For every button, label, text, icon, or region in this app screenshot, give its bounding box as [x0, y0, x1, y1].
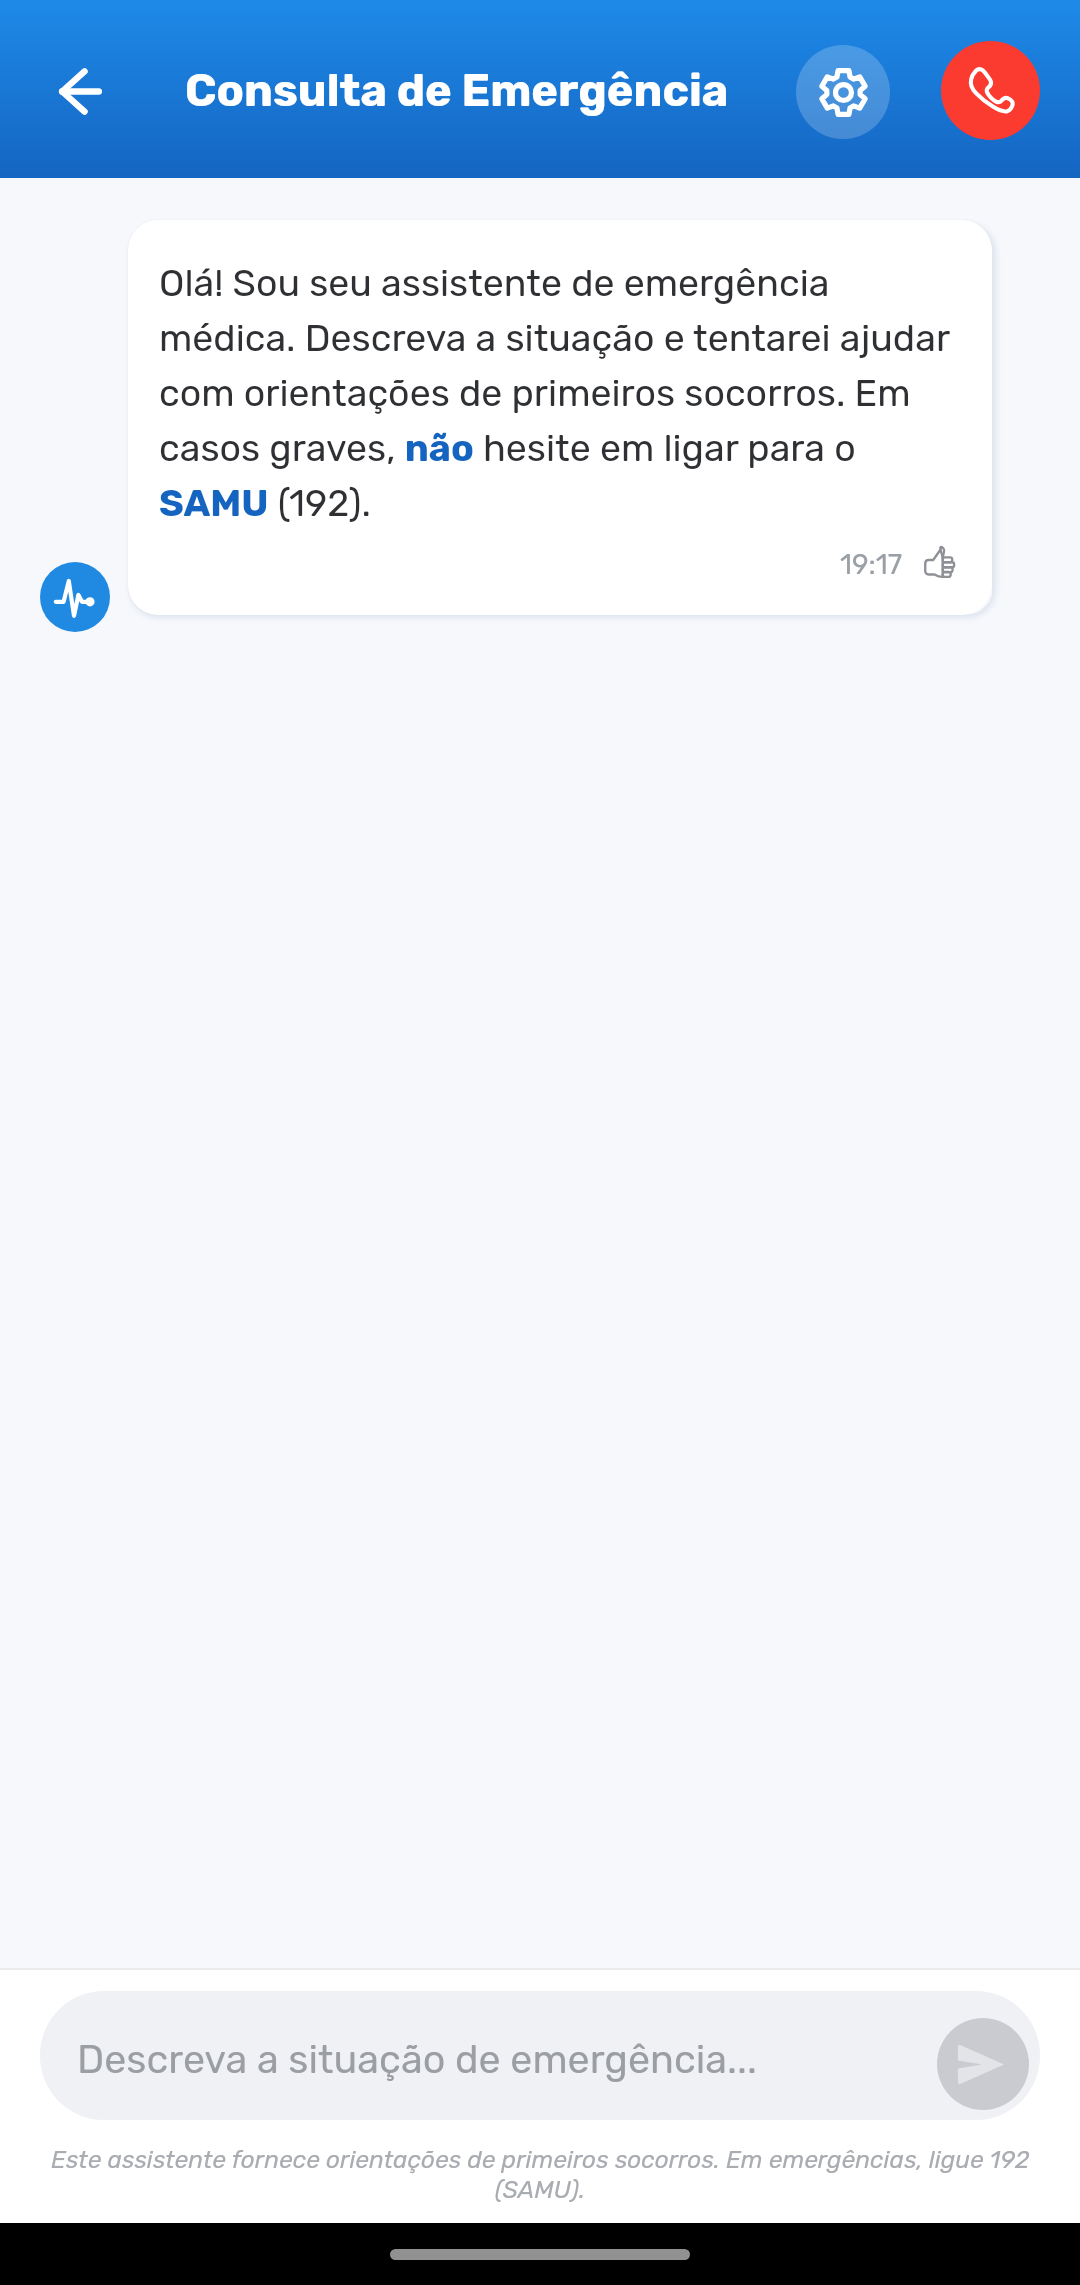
staticText: Consulta de Emergência: [185, 64, 729, 117]
button[interactable]: Ligar para emergência: [941, 41, 1040, 140]
staticText: Este assistente fornece orientações de p…: [42, 2145, 1038, 2205]
staticText: Olá! Sou seu assistente de emergência mé…: [159, 261, 960, 526]
button[interactable]: Descreva a situação de emergência...: [40, 1991, 1040, 2120]
staticText: Descreva a situação de emergência...: [77, 2036, 757, 2083]
button[interactable]: Enviar: [937, 2018, 1029, 2110]
button[interactable]: Configurações: [796, 45, 890, 139]
staticText: 19:17: [840, 548, 903, 581]
button[interactable]: Voltar: [20, 31, 140, 151]
